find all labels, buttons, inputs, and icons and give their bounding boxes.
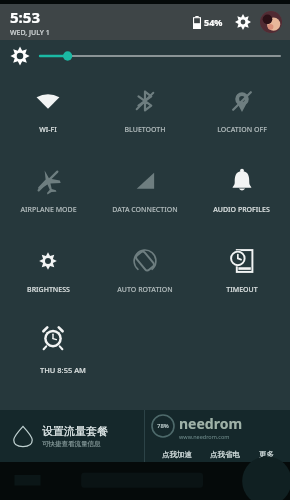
staticText: 更多 xyxy=(259,450,274,459)
staticText: 78% xyxy=(157,422,169,430)
staticText: DATA CONNECTION xyxy=(112,205,178,215)
staticText: 54% xyxy=(204,16,223,28)
staticText: BLUETOOTH xyxy=(124,125,166,135)
button[interactable]: LOCATION OFF xyxy=(193,72,290,152)
staticText: TIMEOUT xyxy=(226,285,258,295)
button[interactable]: AUTO ROTATION xyxy=(96,232,193,312)
button[interactable]: 点我省电 xyxy=(208,450,242,459)
staticText: 可快捷查看流量信息 xyxy=(42,440,101,448)
button[interactable]: 设置流量套餐 xyxy=(0,410,144,462)
staticText: 点我加速 xyxy=(162,450,192,459)
button[interactable]: Brightness slider xyxy=(0,40,290,72)
staticText: 设置流量套餐 xyxy=(42,424,108,438)
staticText: 点我省电 xyxy=(210,450,240,459)
button[interactable]: THU 8:55 AM xyxy=(0,312,290,390)
staticText: WI-FI xyxy=(39,125,57,135)
staticText: AIRPLANE MODE xyxy=(20,205,77,215)
staticText: AUDIO PROFILES xyxy=(213,205,270,215)
button[interactable]: TIMEOUT xyxy=(193,232,290,312)
staticText: 5:53 xyxy=(10,7,40,27)
button[interactable]: AIRPLANE MODE xyxy=(0,152,96,232)
button[interactable]: User profile xyxy=(260,11,282,33)
button[interactable]: WI-FI xyxy=(0,72,96,152)
staticText: WED, JULY 1 xyxy=(10,28,50,38)
staticText: THU 8:55 AM xyxy=(40,365,86,375)
button[interactable]: 点我加速 xyxy=(160,450,194,459)
button[interactable]: DATA CONNECTION xyxy=(96,152,193,232)
staticText: LOCATION OFF xyxy=(217,125,267,135)
button[interactable]: BLUETOOTH xyxy=(96,72,193,152)
button[interactable]: 更多 xyxy=(257,450,276,459)
staticText: needrom xyxy=(179,414,243,433)
button[interactable]: BRIGHTNESS xyxy=(0,232,96,312)
button[interactable]: Settings xyxy=(232,11,254,33)
button[interactable]: AUDIO PROFILES xyxy=(193,152,290,232)
staticText: www.needrom.com xyxy=(179,433,230,440)
staticText: AUTO ROTATION xyxy=(117,285,173,295)
staticText: BRIGHTNESS xyxy=(27,285,70,295)
